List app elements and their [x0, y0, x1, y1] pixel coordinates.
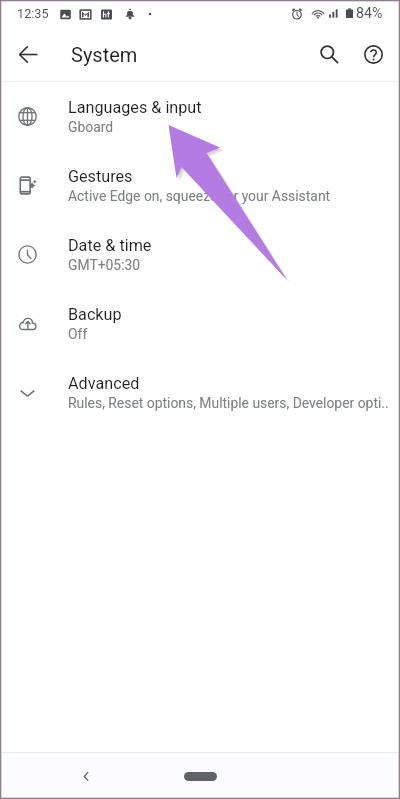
button[interactable]: Search: [307, 32, 351, 76]
staticText: 84%: [356, 5, 383, 22]
button[interactable]: Back: [70, 760, 102, 792]
staticText: Rules, Reset options, Multiple users, De…: [68, 395, 389, 411]
staticText: System: [71, 43, 138, 66]
staticText: Date & time: [68, 236, 152, 255]
staticText: Advanced: [68, 374, 140, 393]
staticText: Gboard: [68, 119, 114, 135]
button[interactable]: Advanced: [0, 358, 400, 427]
staticText: Off: [68, 326, 88, 342]
button[interactable]: Help: [351, 32, 395, 76]
button[interactable]: Gestures: [0, 151, 400, 220]
button[interactable]: Home: [184, 772, 217, 781]
staticText: 12:35: [17, 6, 49, 21]
staticText: Languages & input: [68, 98, 202, 117]
button[interactable]: Backup: [0, 289, 400, 358]
staticText: Backup: [68, 305, 122, 324]
button[interactable]: Back: [6, 32, 50, 76]
staticText: GMT+05:30: [68, 257, 141, 273]
button[interactable]: Languages & input: [0, 82, 400, 151]
staticText: Active Edge on, squeeze for your Assista…: [68, 188, 331, 204]
button[interactable]: Date & time: [0, 220, 400, 289]
staticText: Gestures: [68, 167, 133, 186]
